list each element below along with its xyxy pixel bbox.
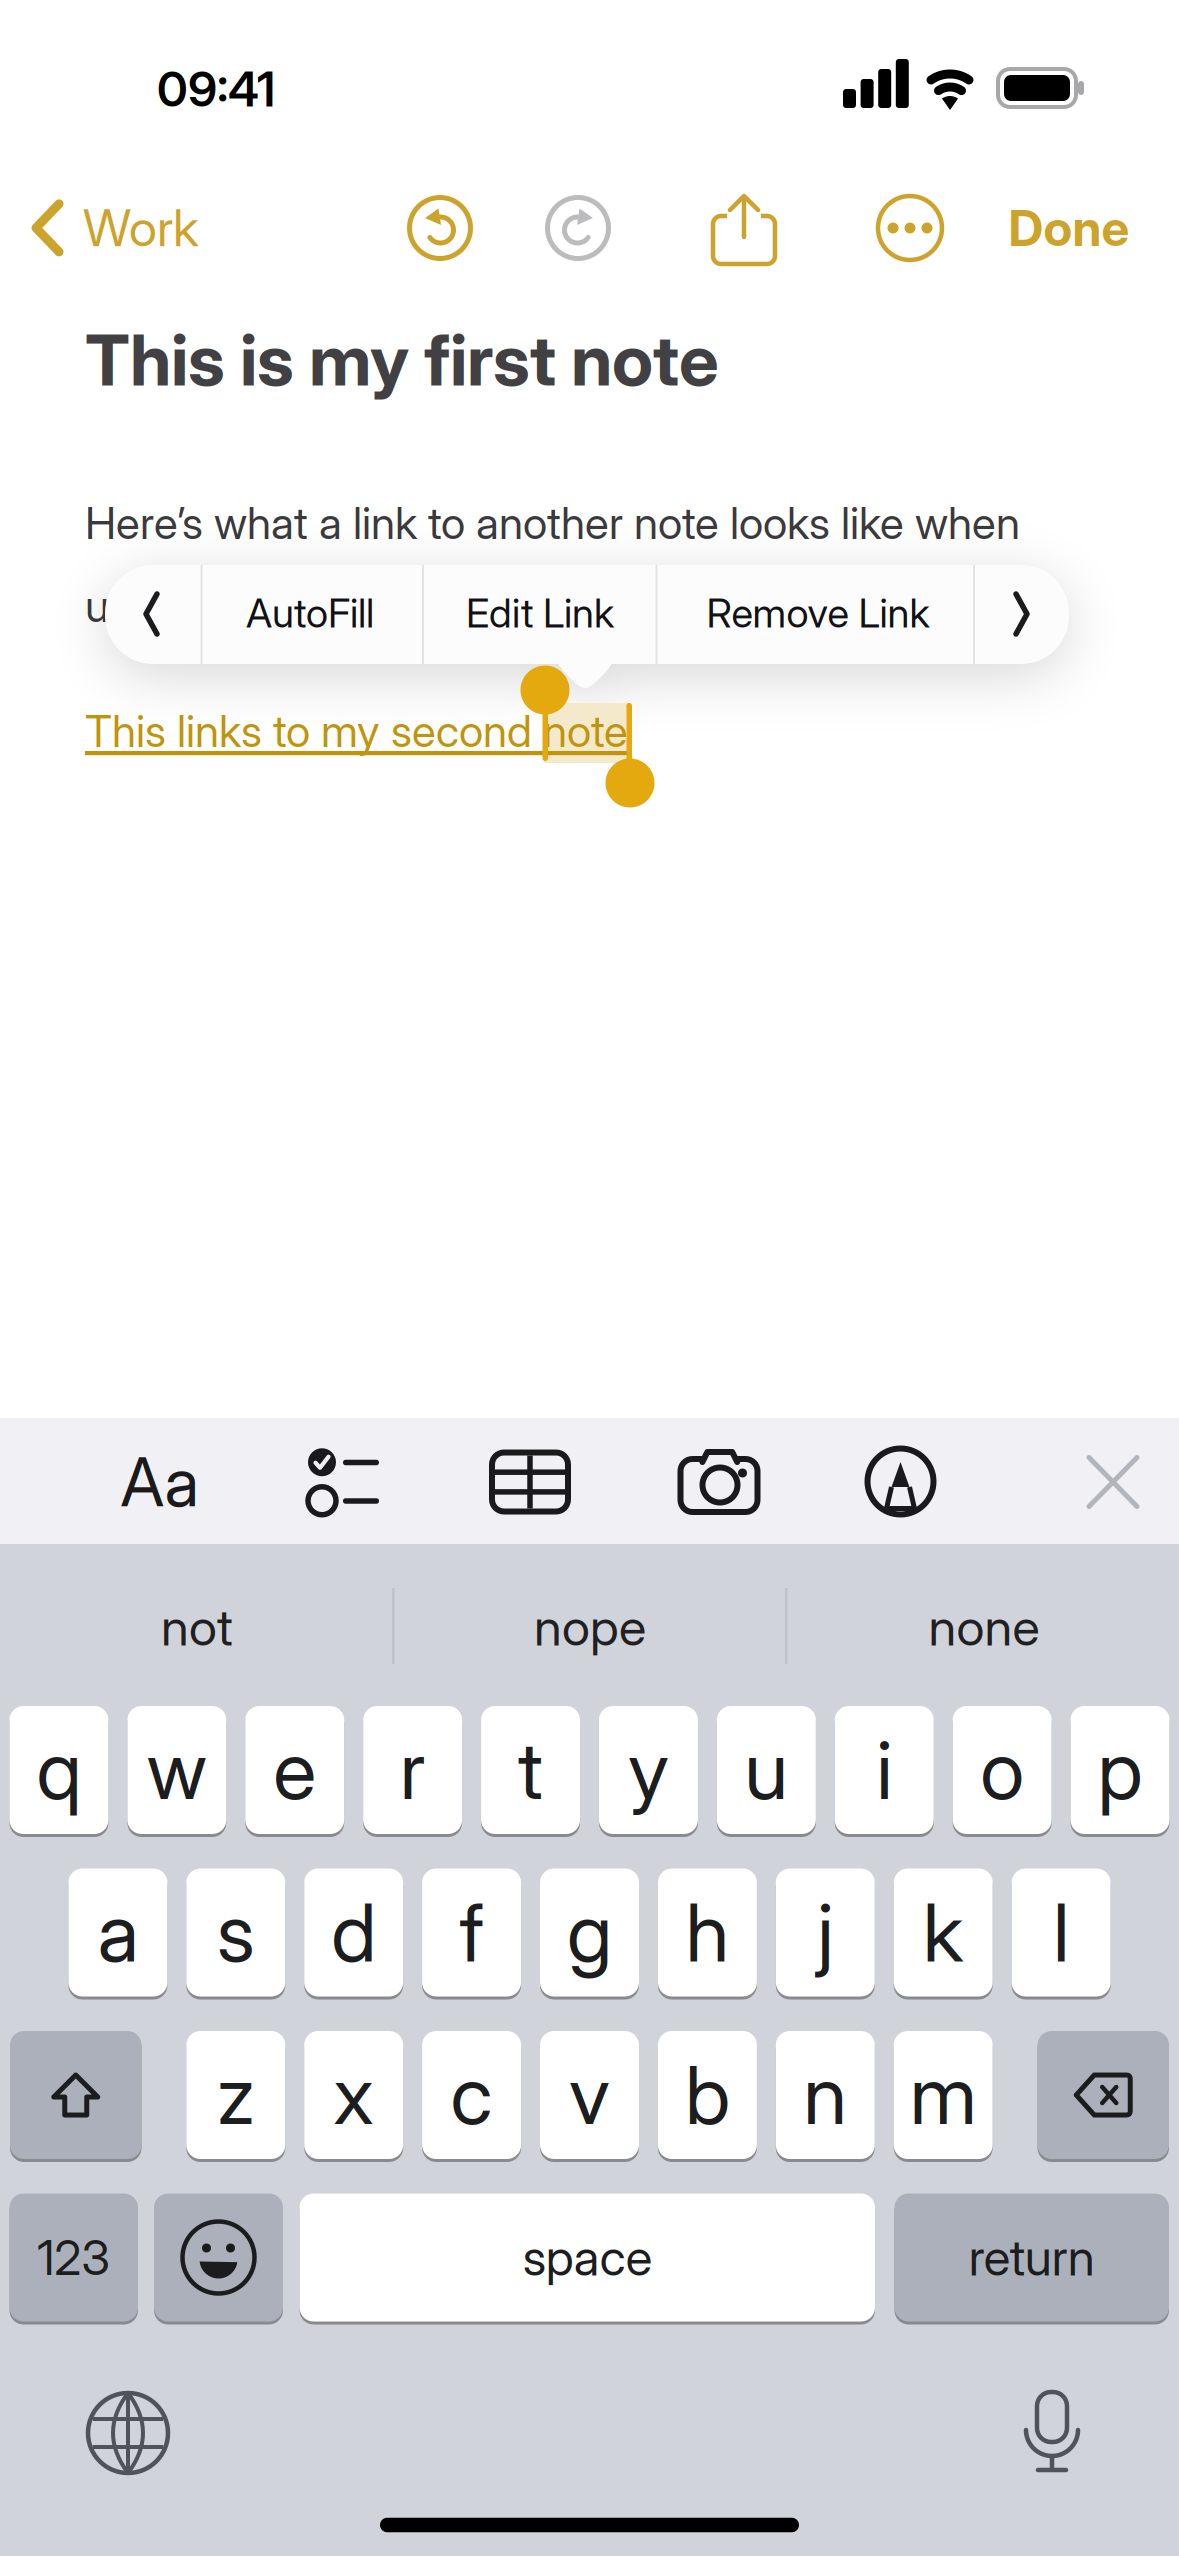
staticText: i: [876, 1723, 892, 1817]
staticText: u: [85, 580, 109, 632]
button[interactable]: x: [304, 2031, 403, 2159]
button[interactable]: g: [540, 1868, 639, 1996]
button[interactable]: [680, 1449, 758, 1513]
staticText: p: [1098, 1723, 1143, 1817]
button[interactable]: [409, 197, 470, 258]
staticText: This is my first note: [85, 318, 719, 401]
staticText: c: [451, 2048, 493, 2142]
button[interactable]: [144, 592, 160, 636]
staticText: u: [744, 1723, 788, 1817]
staticText: This links to my second note: [85, 705, 628, 757]
button[interactable]: Done: [1008, 199, 1129, 257]
button[interactable]: Aa: [120, 1443, 199, 1521]
button[interactable]: c: [422, 2031, 521, 2159]
staticText: b: [685, 2048, 730, 2142]
staticText: Done: [1008, 199, 1129, 257]
button[interactable]: d: [304, 1868, 403, 1996]
button[interactable]: return: [894, 2193, 1169, 2321]
button[interactable]: Edit Link: [466, 589, 614, 637]
button[interactable]: none: [928, 1597, 1039, 1657]
staticText: f: [460, 1885, 484, 1980]
staticText: w: [147, 1723, 207, 1817]
staticText: k: [923, 1885, 964, 1980]
button[interactable]: o: [953, 1706, 1052, 1834]
button[interactable]: y: [599, 1706, 698, 1834]
button[interactable]: [547, 197, 608, 258]
staticText: Work: [83, 198, 199, 258]
button[interactable]: [10, 2031, 141, 2159]
button[interactable]: m: [894, 2031, 993, 2159]
staticText: x: [333, 2048, 374, 2142]
staticText: v: [569, 2048, 610, 2142]
button[interactable]: This links to my second note: [85, 705, 628, 757]
button[interactable]: Remove Link: [706, 589, 929, 637]
staticText: space: [523, 2228, 652, 2287]
button[interactable]: a: [68, 1868, 167, 1996]
button[interactable]: f: [422, 1868, 521, 1996]
staticText: t: [518, 1723, 543, 1817]
button[interactable]: AutoFill: [246, 589, 374, 637]
staticText: r: [400, 1723, 426, 1817]
staticText: h: [685, 1885, 729, 1980]
button[interactable]: [712, 192, 776, 264]
button[interactable]: [308, 1448, 379, 1515]
staticText: a: [97, 1885, 138, 1980]
staticText: Aa: [120, 1443, 199, 1521]
button[interactable]: h: [658, 1868, 757, 1996]
button[interactable]: z: [186, 2031, 285, 2159]
button[interactable]: [1013, 592, 1029, 636]
button[interactable]: u: [717, 1706, 816, 1834]
button[interactable]: [1088, 1456, 1138, 1507]
button[interactable]: 123: [9, 2193, 138, 2321]
button[interactable]: i: [835, 1706, 934, 1834]
staticText: Edit Link: [466, 589, 614, 637]
button[interactable]: [88, 2393, 168, 2473]
button[interactable]: t: [481, 1706, 580, 1834]
button[interactable]: [867, 1448, 933, 1514]
button[interactable]: n: [776, 2031, 875, 2159]
button[interactable]: b: [658, 2031, 757, 2159]
button[interactable]: [154, 2193, 283, 2321]
staticText: s: [217, 1885, 255, 1980]
staticText: d: [331, 1885, 376, 1980]
staticText: n: [803, 2048, 847, 2142]
button[interactable]: r: [363, 1706, 462, 1834]
button[interactable]: p: [1071, 1706, 1170, 1834]
button[interactable]: e: [245, 1706, 344, 1834]
staticText: e: [273, 1723, 316, 1817]
button[interactable]: space: [299, 2193, 875, 2321]
button[interactable]: [1037, 2031, 1169, 2159]
staticText: return: [969, 2228, 1095, 2287]
button[interactable]: q: [9, 1706, 108, 1834]
staticText: not: [161, 1597, 233, 1657]
staticText: AutoFill: [246, 589, 374, 637]
staticText: 09:41: [157, 61, 275, 117]
button[interactable]: w: [127, 1706, 226, 1834]
staticText: m: [910, 2048, 977, 2142]
staticText: l: [1053, 1885, 1069, 1980]
staticText: Here’s what a link to another note looks…: [85, 497, 1020, 549]
button[interactable]: [492, 1452, 568, 1511]
button[interactable]: [878, 196, 942, 260]
staticText: Remove Link: [706, 589, 929, 637]
button[interactable]: v: [540, 2031, 639, 2159]
button[interactable]: Work: [32, 198, 199, 258]
button[interactable]: [1012, 2392, 1092, 2472]
staticText: g: [567, 1885, 612, 1980]
button[interactable]: not: [161, 1597, 233, 1657]
button[interactable]: s: [186, 1868, 285, 1996]
staticText: z: [217, 2048, 255, 2142]
button[interactable]: l: [1012, 1868, 1111, 1996]
button[interactable]: k: [894, 1868, 993, 1996]
staticText: 123: [37, 2229, 110, 2286]
button[interactable]: j: [776, 1868, 875, 1996]
staticText: y: [628, 1723, 669, 1817]
staticText: q: [36, 1723, 81, 1817]
button[interactable]: nope: [534, 1597, 646, 1657]
staticText: j: [817, 1885, 833, 1980]
staticText: o: [980, 1723, 1024, 1817]
staticText: none: [928, 1597, 1039, 1657]
staticText: nope: [534, 1597, 646, 1657]
